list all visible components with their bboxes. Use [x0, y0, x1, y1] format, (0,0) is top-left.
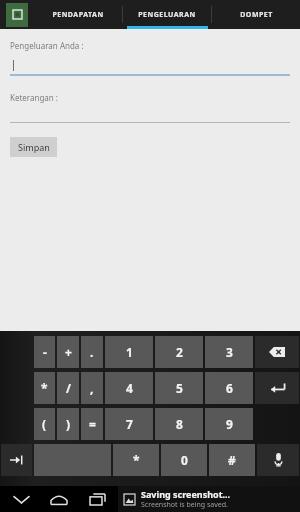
staticText: 8 — [176, 416, 183, 432]
staticText: - — [43, 344, 47, 360]
button[interactable]: Enter — [255, 372, 299, 404]
staticText: . — [90, 344, 94, 360]
button[interactable]: DOMPET — [212, 0, 300, 29]
button[interactable]: PENGELUARAN — [123, 0, 211, 29]
button[interactable]: = — [81, 408, 103, 440]
button[interactable]: 0 — [161, 444, 207, 476]
staticText: * — [133, 452, 140, 468]
staticText: Keterangan : — [10, 92, 59, 103]
button[interactable]: + — [57, 336, 79, 368]
button[interactable]: Back — [4, 486, 38, 512]
button[interactable]: Delete — [255, 336, 299, 368]
staticText: 5 — [176, 380, 183, 396]
button[interactable]: Home — [42, 486, 76, 512]
staticText: 4 — [126, 380, 133, 396]
staticText: 7 — [126, 416, 133, 432]
staticText: = — [89, 416, 96, 432]
staticText: Saving screenshot... — [141, 488, 231, 500]
staticText: Simpan — [18, 141, 50, 153]
button[interactable]: # — [209, 444, 255, 476]
staticText: 0 — [181, 452, 188, 468]
button[interactable]: * — [34, 372, 55, 404]
button[interactable]: / — [57, 372, 79, 404]
button[interactable]: 1 — [105, 336, 153, 368]
button[interactable]: . — [81, 336, 103, 368]
button[interactable]: 9 — [205, 408, 253, 440]
staticText: 2 — [176, 344, 183, 360]
button[interactable]: PENDAPATAN — [33, 0, 122, 29]
button[interactable]: Tab — [1, 444, 32, 476]
button[interactable]: 3 — [205, 336, 253, 368]
button[interactable]: - — [34, 336, 55, 368]
button[interactable]: 5 — [155, 372, 203, 404]
staticText: PENGELUARAN — [138, 10, 196, 20]
staticText: 1 — [126, 344, 133, 360]
staticText: 9 — [226, 416, 233, 432]
button[interactable]: Voice input — [257, 444, 299, 476]
staticText: / — [66, 380, 71, 396]
staticText: # — [228, 452, 236, 468]
button[interactable]: ) — [57, 408, 79, 440]
staticText: DOMPET — [240, 10, 273, 20]
button[interactable]: 4 — [105, 372, 153, 404]
staticText: Pengeluaran Anda : — [10, 40, 84, 51]
staticText: ( — [42, 416, 47, 432]
staticText: 6 — [226, 380, 233, 396]
button[interactable]: Simpan — [10, 137, 57, 157]
staticText: 3 — [226, 344, 233, 360]
staticText: , — [90, 380, 94, 396]
button[interactable]: 6 — [205, 372, 253, 404]
button[interactable]: App icon — [0, 0, 33, 29]
button[interactable]: * — [113, 444, 159, 476]
button[interactable]: , — [81, 372, 103, 404]
staticText: + — [65, 344, 72, 360]
button[interactable]: 7 — [105, 408, 153, 440]
button[interactable]: Saving screenshot... — [124, 486, 300, 512]
button[interactable]: ( — [34, 408, 55, 440]
staticText: ) — [66, 416, 71, 432]
staticText: PENDAPATAN — [52, 10, 104, 20]
button[interactable]: 8 — [155, 408, 203, 440]
staticText: * — [41, 380, 48, 396]
button[interactable]: Recents — [80, 486, 114, 512]
staticText: Screenshot is being saved. — [141, 500, 228, 510]
button[interactable]: 2 — [155, 336, 203, 368]
